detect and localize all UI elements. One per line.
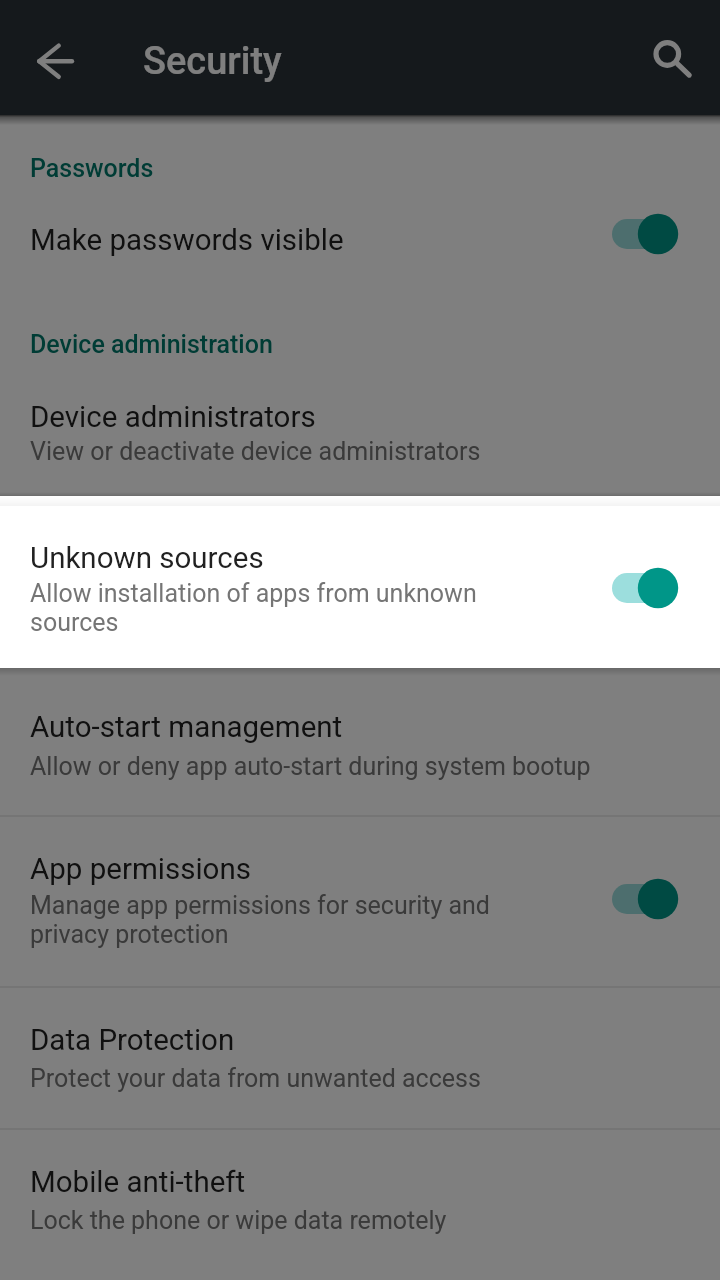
button[interactable]: Search [634,22,702,90]
staticText: Make passwords visible [30,223,690,258]
staticText: Allow installation of apps from unknown … [30,579,500,637]
staticText: Device administrators [30,400,690,435]
button[interactable] [0,680,720,816]
staticText: Device administration [30,330,690,359]
staticText: Auto-start management [30,710,690,745]
staticText: Manage app permissions for security and … [30,891,520,949]
staticText: Data Protection [30,1023,690,1058]
button[interactable]: Unknown sources toggle [610,554,706,622]
staticText: Allow or deny app auto-start during syst… [30,752,690,781]
staticText: View or deactivate device administrators [30,437,690,466]
button[interactable]: Make passwords visible toggle [610,200,706,268]
button[interactable] [0,1129,720,1269]
button[interactable]: Back [28,27,96,95]
staticText: Security [143,39,282,84]
button[interactable] [0,988,720,1128]
staticText: Protect your data from unwanted access [30,1064,690,1093]
button[interactable] [0,496,720,668]
staticText: App permissions [30,852,690,887]
button[interactable]: App permissions toggle [610,865,706,933]
staticText: Mobile anti-theft [30,1165,690,1200]
button[interactable] [0,816,720,987]
button[interactable] [0,196,720,296]
staticText: Unknown sources [30,541,690,576]
staticText: Lock the phone or wipe data remotely [30,1206,690,1235]
button[interactable] [0,372,720,492]
staticText: Passwords [30,154,690,183]
